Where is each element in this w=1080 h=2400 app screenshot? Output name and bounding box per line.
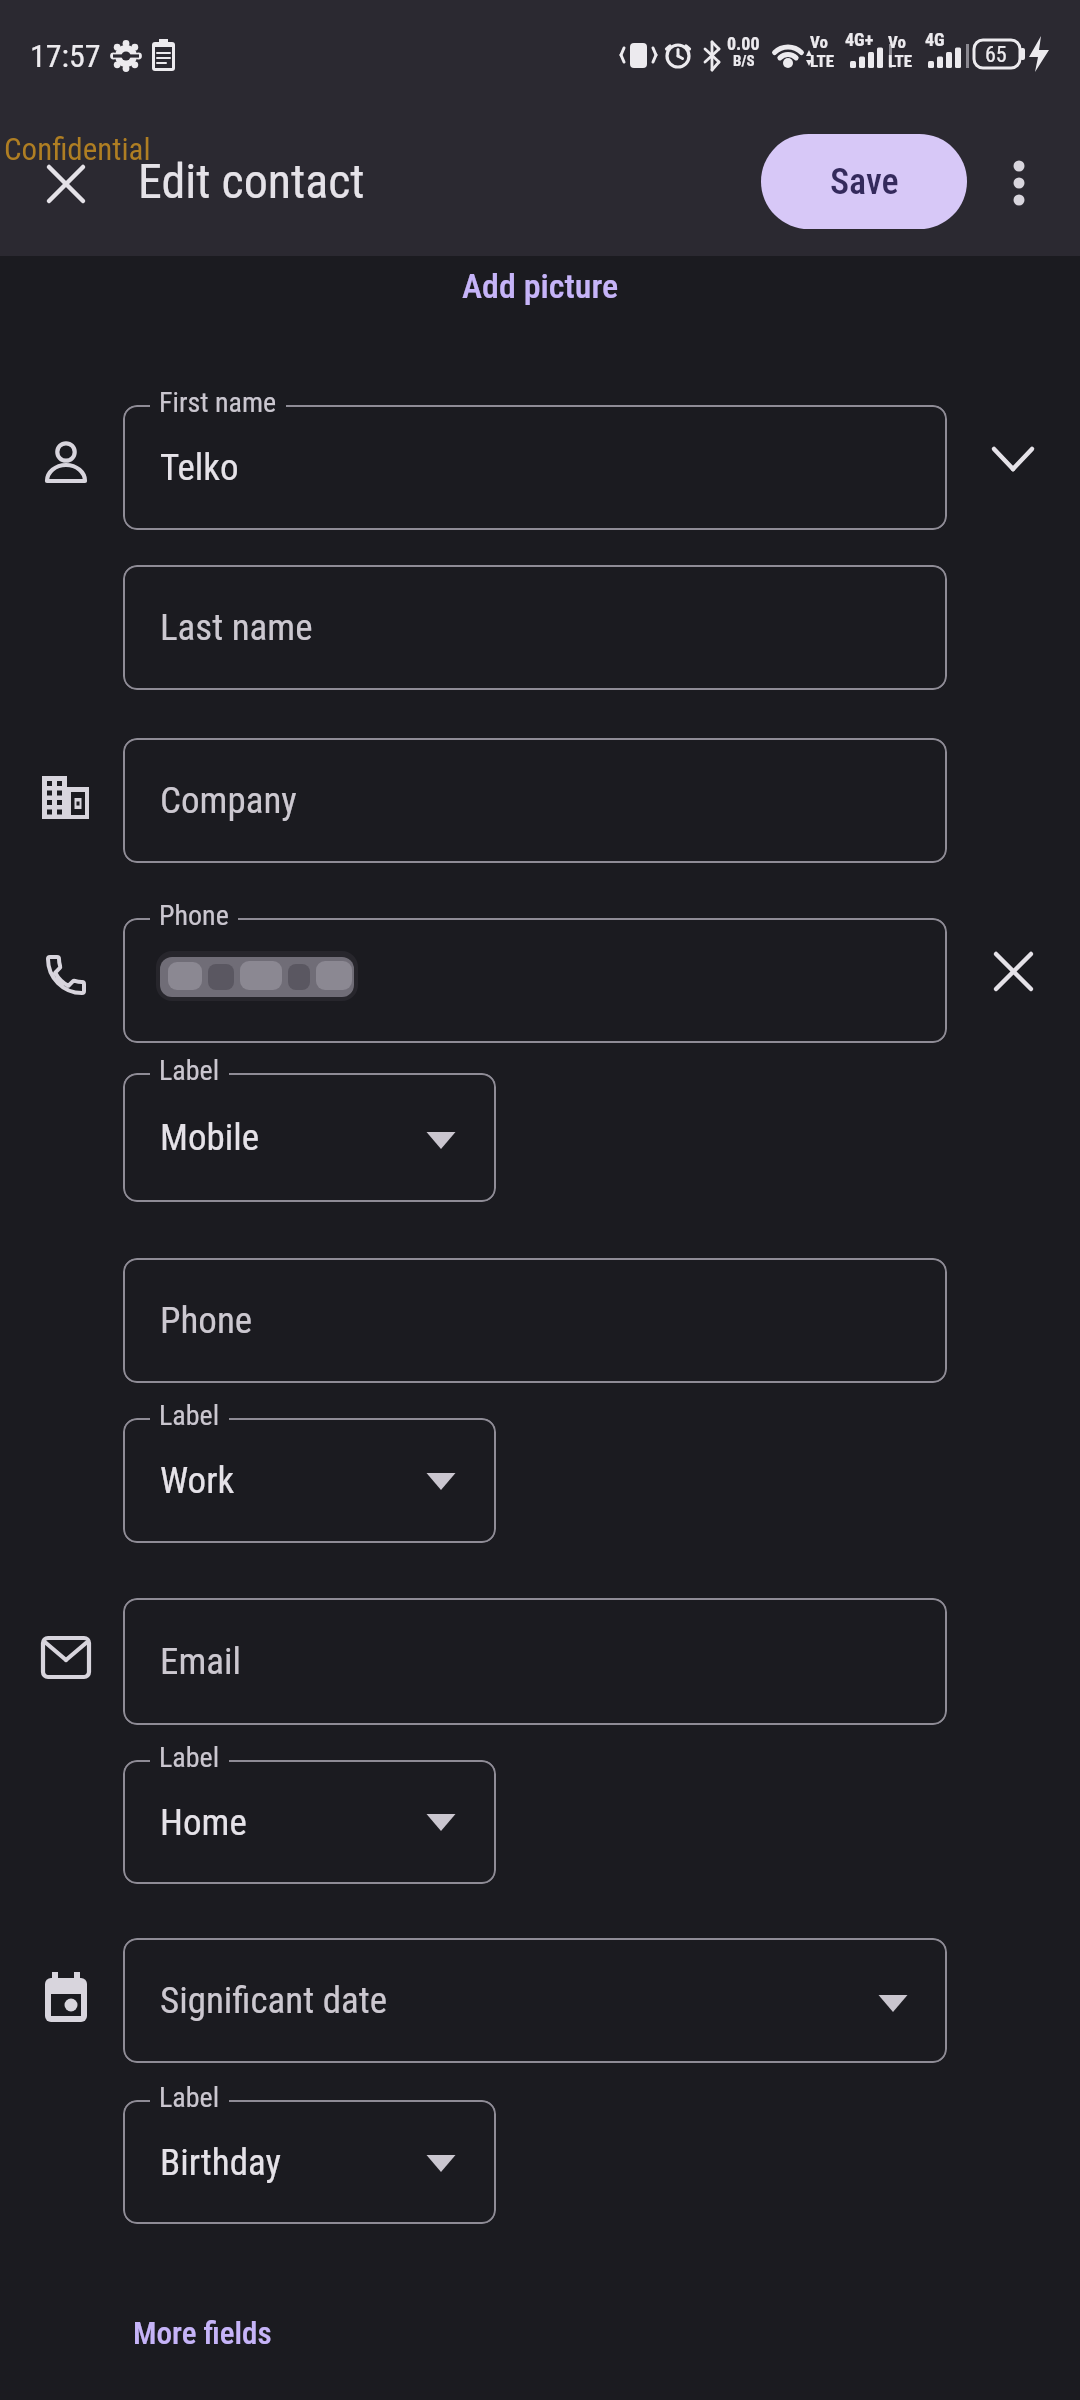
staticText: Telko — [160, 446, 239, 489]
staticText: Phone — [159, 899, 229, 932]
button[interactable] — [987, 147, 1051, 219]
button[interactable]: Home — [123, 1760, 496, 1884]
button[interactable]: Significant date — [123, 1938, 947, 2063]
button[interactable] — [977, 423, 1049, 495]
staticText: Email — [160, 1640, 241, 1683]
staticText: Work — [160, 1459, 235, 1502]
staticText: B/S — [733, 52, 755, 70]
staticText: 4G — [925, 29, 945, 50]
button[interactable] — [977, 935, 1049, 1007]
staticText: Label — [159, 2081, 220, 2114]
staticText: Last name — [160, 606, 313, 649]
button[interactable]: Email — [123, 1598, 947, 1725]
button[interactable]: Birthday — [123, 2100, 496, 2224]
staticText: Birthday — [160, 2141, 281, 2184]
staticText: 17:57 — [30, 37, 101, 75]
button[interactable]: Telko — [123, 405, 947, 530]
button[interactable]: More fields — [133, 2315, 272, 2351]
button[interactable]: Company — [123, 738, 947, 863]
staticText: Phone — [160, 1299, 253, 1342]
staticText: Significant date — [160, 1979, 388, 2022]
staticText: Mobile — [160, 1116, 260, 1159]
staticText: Save — [830, 161, 899, 203]
staticText: Label — [159, 1054, 220, 1087]
staticText: 65 — [985, 42, 1007, 68]
staticText: Label — [159, 1399, 220, 1432]
button[interactable]: Mobile — [123, 1073, 496, 1202]
staticText: Vo LTE — [810, 32, 835, 71]
staticText: Confidential — [4, 131, 151, 167]
staticText: Home — [160, 1801, 247, 1844]
button[interactable]: Last name — [123, 565, 947, 690]
staticText: Vo LTE — [888, 32, 913, 71]
staticText: 4G+ — [845, 29, 874, 50]
button[interactable]: Save — [761, 134, 967, 229]
button[interactable]: Phone — [123, 1258, 947, 1383]
button[interactable]: Add picture — [462, 266, 619, 306]
button[interactable] — [30, 148, 102, 220]
staticText: Edit contact — [138, 153, 365, 209]
button[interactable]: Work — [123, 1418, 496, 1543]
button[interactable] — [123, 918, 947, 1043]
staticText: Company — [160, 779, 297, 822]
staticText: Label — [159, 1741, 220, 1774]
staticText: 0.00 — [727, 33, 760, 54]
staticText: First name — [159, 386, 277, 419]
